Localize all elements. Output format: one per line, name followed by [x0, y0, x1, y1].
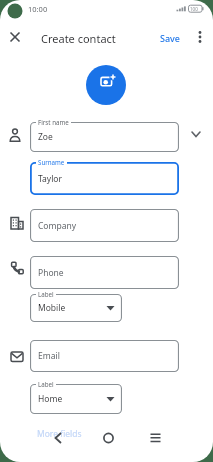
button[interactable] — [95, 426, 121, 452]
button[interactable]: Email — [30, 340, 179, 372]
staticText: Phone — [38, 267, 64, 279]
staticText: Mobile — [38, 302, 66, 314]
staticText: Label — [38, 290, 54, 298]
staticText: Taylor — [38, 173, 62, 185]
staticText: More fields — [37, 428, 82, 440]
button[interactable]: Save — [160, 32, 181, 44]
staticText: Home — [38, 393, 63, 405]
button[interactable]: Phone — [30, 256, 179, 289]
staticText: Label — [38, 380, 54, 388]
staticText: Surname — [38, 158, 65, 166]
staticText: Company — [38, 220, 77, 232]
button[interactable]: Taylor — [30, 162, 179, 195]
button[interactable] — [86, 65, 126, 105]
staticText: Save — [160, 32, 181, 44]
staticText: 100 — [190, 6, 198, 12]
button[interactable]: Home — [30, 384, 122, 414]
staticText: Zoe — [38, 131, 53, 143]
button[interactable] — [192, 29, 208, 45]
button[interactable]: Zoe — [30, 122, 179, 152]
staticText: 10:00 — [28, 4, 48, 14]
staticText: First name — [38, 118, 69, 126]
button[interactable]: More fields — [37, 428, 82, 440]
staticText: Create contact — [41, 31, 116, 46]
button[interactable] — [44, 426, 70, 452]
button[interactable] — [143, 426, 169, 452]
button[interactable]: Company — [30, 209, 179, 242]
staticText: Email — [38, 350, 60, 362]
button[interactable] — [7, 29, 23, 45]
button[interactable]: Mobile — [30, 294, 122, 322]
